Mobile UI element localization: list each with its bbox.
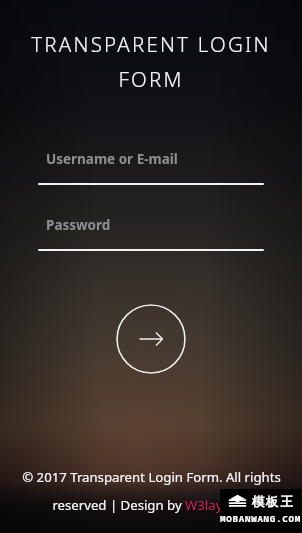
staticText: 模板王 xyxy=(252,494,295,510)
staticText: MOBANWANG.COM xyxy=(220,512,301,525)
button[interactable]: mobanwang.com watermark xyxy=(220,489,301,532)
staticText: TRANSPARENT LOGIN xyxy=(31,30,271,58)
button[interactable]: Submit login xyxy=(116,304,186,374)
staticText: © 2017 Transparent Login Form. All right… xyxy=(22,468,281,486)
button[interactable]: Username or E-mail xyxy=(38,150,264,185)
staticText: reserved | Design by W3layouts xyxy=(52,496,250,514)
staticText: Password xyxy=(46,216,111,234)
staticText: Username or E-mail xyxy=(46,150,178,168)
button[interactable]: Password xyxy=(38,216,264,251)
staticText: FORM xyxy=(118,65,184,93)
